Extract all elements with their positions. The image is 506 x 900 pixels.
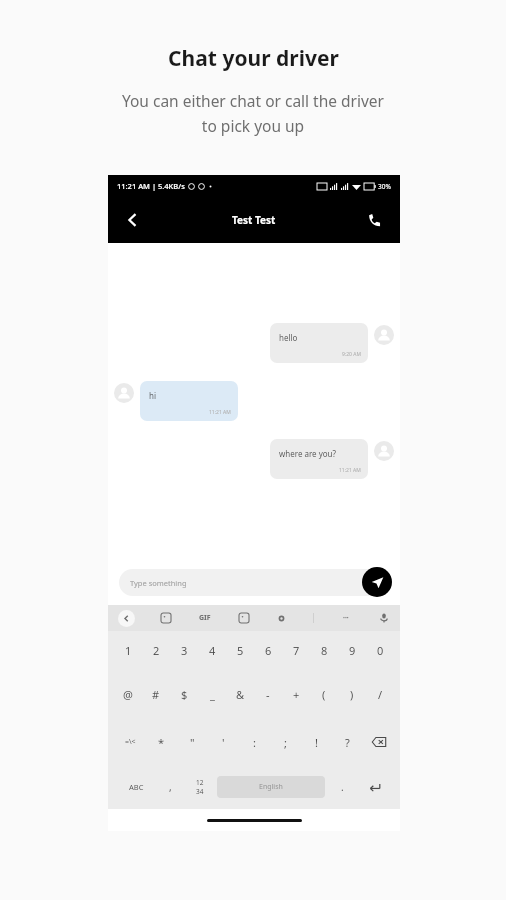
staticText: 6: [265, 643, 272, 658]
staticText: _: [210, 687, 215, 702]
staticText: hello: [279, 332, 298, 343]
staticText: @: [123, 687, 133, 702]
button[interactable]: 4: [198, 631, 226, 669]
staticText: 30%: [378, 182, 391, 191]
button[interactable]: ;: [270, 719, 301, 765]
button[interactable]: /: [366, 669, 394, 719]
button[interactable]: Call: [360, 205, 390, 235]
button[interactable]: 3: [170, 631, 198, 669]
button[interactable]: 1: [114, 631, 142, 669]
button[interactable]: ABC: [116, 765, 156, 809]
staticText: :: [253, 735, 256, 750]
button[interactable]: 9: [338, 631, 366, 669]
button[interactable]: Back: [118, 205, 148, 235]
staticText: !: [315, 735, 318, 750]
button[interactable]: Settings: [276, 613, 287, 624]
staticText: ': [222, 735, 225, 750]
staticText: 11:21 AM: [209, 409, 231, 416]
button[interactable]: English: [217, 776, 325, 798]
staticText: #: [152, 687, 160, 702]
button[interactable]: +: [282, 669, 310, 719]
staticText: hi: [149, 390, 157, 401]
button[interactable]: 0: [366, 631, 394, 669]
staticText: ": [190, 735, 195, 750]
staticText: .: [341, 780, 344, 794]
button[interactable]: :: [239, 719, 270, 765]
staticText: 9:20 AM: [342, 351, 361, 358]
button[interactable]: Enter: [357, 765, 392, 809]
staticText: 0: [377, 643, 384, 658]
button[interactable]: .: [328, 765, 357, 809]
button[interactable]: 5: [226, 631, 254, 669]
staticText: (: [322, 687, 326, 702]
staticText: =\<: [125, 737, 136, 747]
staticText: ABC: [129, 782, 144, 792]
staticText: &: [236, 687, 245, 702]
button[interactable]: 8: [310, 631, 338, 669]
button[interactable]: =\<: [114, 719, 146, 765]
button[interactable]: Back: [118, 610, 135, 627]
staticText: 9: [349, 643, 356, 658]
staticText: 2: [153, 643, 160, 658]
button[interactable]: Clipboard: [238, 612, 250, 624]
staticText: GIF: [199, 613, 211, 623]
button[interactable]: @: [114, 669, 142, 719]
staticText: 11:21 AM | 5.4KB/s: [117, 181, 185, 191]
staticText: Chat your driver: [168, 44, 339, 73]
staticText: 11:21 AM: [339, 467, 361, 474]
button[interactable]: &: [226, 669, 254, 719]
button[interactable]: (: [310, 669, 338, 719]
staticText: •••: [343, 615, 349, 622]
button[interactable]: where are you?: [270, 439, 368, 479]
staticText: Type something: [130, 578, 187, 588]
button[interactable]: hi: [140, 381, 238, 421]
staticText: 4: [209, 643, 216, 658]
staticText: Test Test: [232, 213, 276, 227]
staticText: 8: [321, 643, 328, 658]
button[interactable]: hello: [270, 323, 368, 363]
button[interactable]: !: [301, 719, 332, 765]
staticText: *: [158, 735, 165, 750]
staticText: English: [259, 782, 283, 792]
staticText: 34: [196, 787, 204, 796]
button[interactable]: 12: [185, 765, 214, 809]
button[interactable]: GIF: [197, 613, 213, 623]
staticText: 1: [125, 643, 132, 658]
button[interactable]: ): [338, 669, 366, 719]
button[interactable]: -: [254, 669, 282, 719]
staticText: 5: [237, 643, 244, 658]
button[interactable]: Sticker: [160, 612, 172, 624]
button[interactable]: Backspace: [363, 719, 394, 765]
button[interactable]: $: [170, 669, 198, 719]
staticText: ,: [169, 780, 172, 794]
button[interactable]: ?: [332, 719, 363, 765]
button[interactable]: _: [198, 669, 226, 719]
button[interactable]: 7: [282, 631, 310, 669]
staticText: -: [266, 687, 270, 702]
staticText: ): [350, 687, 354, 702]
staticText: ?: [345, 735, 350, 750]
staticText: 7: [293, 643, 300, 658]
button[interactable]: 6: [254, 631, 282, 669]
button[interactable]: ': [208, 719, 239, 765]
staticText: +: [293, 687, 300, 702]
staticText: ;: [284, 735, 287, 750]
button[interactable]: *: [146, 719, 177, 765]
button[interactable]: Voice input: [378, 612, 390, 624]
button[interactable]: More: [340, 612, 352, 624]
staticText: 3: [181, 643, 188, 658]
staticText: $: [181, 687, 188, 702]
button[interactable]: 2: [142, 631, 170, 669]
button[interactable]: #: [142, 669, 170, 719]
button[interactable]: Type something: [119, 569, 384, 596]
staticText: where are you?: [279, 448, 337, 459]
button[interactable]: ": [177, 719, 208, 765]
staticText: 12: [196, 778, 204, 787]
staticText: You can either chat or call the driver t…: [73, 90, 433, 137]
staticText: /: [378, 687, 383, 702]
button[interactable]: ,: [156, 765, 185, 809]
button[interactable]: Send: [362, 567, 392, 597]
